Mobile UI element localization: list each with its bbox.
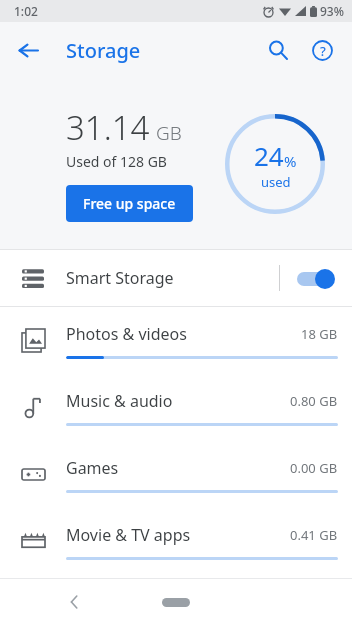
button[interactable]: Music & audio: [0, 374, 352, 441]
staticText: 93%: [320, 3, 344, 19]
staticText: %: [284, 151, 297, 171]
staticText: ?: [320, 42, 326, 60]
staticText: Movie & TV apps: [66, 524, 191, 546]
staticText: Storage: [66, 37, 141, 64]
button[interactable]: Back: [6, 28, 50, 72]
staticText: 18 GB: [301, 325, 338, 343]
button[interactable]: Search: [256, 28, 300, 72]
button[interactable]: Back: [56, 583, 94, 621]
staticText: 0.41 GB: [290, 526, 338, 544]
staticText: 0.80 GB: [290, 392, 338, 410]
button[interactable]: Movie & TV apps: [0, 508, 352, 575]
button[interactable]: Free up space: [66, 185, 193, 222]
button[interactable]: Smart Storage: [0, 250, 352, 306]
staticText: GB: [156, 120, 182, 146]
staticText: used: [261, 173, 291, 191]
button[interactable]: Home: [146, 591, 206, 613]
button[interactable]: Help: [300, 28, 344, 72]
button[interactable]: Smart Storage toggle: [280, 250, 352, 306]
button[interactable]: Photos & videos: [0, 307, 352, 374]
staticText: 24: [254, 138, 284, 173]
staticText: 31.14: [66, 105, 150, 150]
button[interactable]: Games: [0, 441, 352, 508]
staticText: Games: [66, 457, 119, 479]
staticText: Photos & videos: [66, 323, 187, 345]
staticText: 0.00 GB: [290, 459, 338, 477]
staticText: 1:02: [14, 3, 38, 19]
staticText: Smart Storage: [66, 267, 174, 289]
staticText: Used of 128 GB: [66, 152, 167, 171]
staticText: Free up space: [83, 194, 176, 213]
staticText: Music & audio: [66, 390, 173, 412]
